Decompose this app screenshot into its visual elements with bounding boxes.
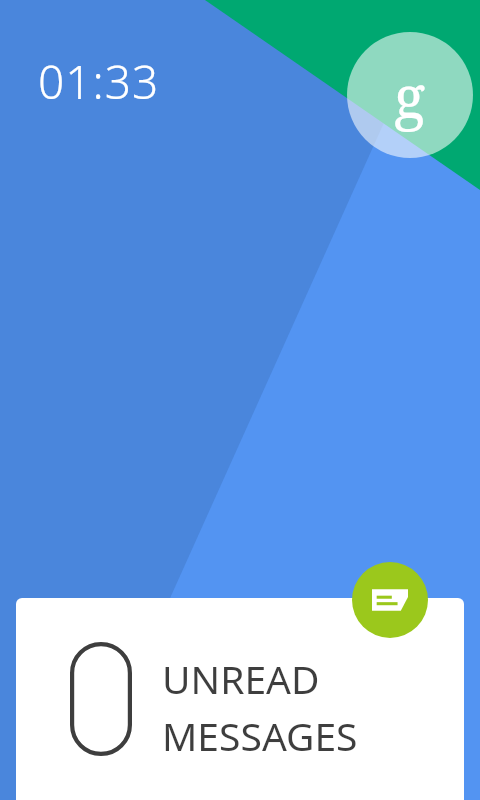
staticText: g (394, 56, 426, 135)
staticText: 01:33 (38, 50, 160, 113)
button[interactable]: UNREAD (16, 598, 464, 800)
staticText: UNREAD (162, 652, 320, 705)
button[interactable]: Messages (352, 562, 428, 638)
button[interactable]: Google search (347, 32, 473, 158)
staticText: MESSAGES (162, 709, 358, 762)
